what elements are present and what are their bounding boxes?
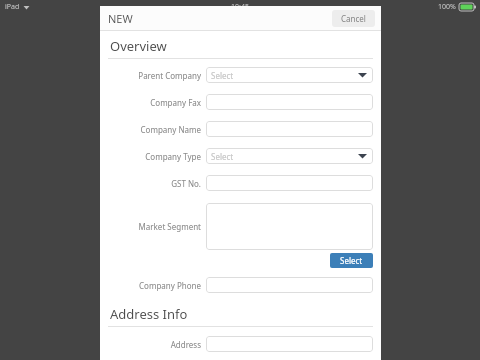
staticText: Company Fax	[108, 97, 201, 108]
staticText: Company Phone	[108, 280, 201, 291]
staticText: NEW	[108, 11, 133, 26]
button[interactable]: Select option	[206, 67, 373, 83]
button[interactable]: Cancel	[332, 10, 375, 27]
button[interactable]	[206, 203, 373, 250]
staticText: 100%	[438, 2, 456, 12]
button[interactable]	[206, 121, 373, 137]
staticText: Select	[211, 151, 234, 162]
staticText: Address	[108, 339, 201, 350]
staticText: Select	[211, 70, 234, 81]
staticText: Select	[340, 255, 363, 266]
button[interactable]	[206, 277, 373, 293]
button[interactable]	[206, 94, 373, 110]
button[interactable]	[206, 175, 373, 191]
staticText: Address Info	[110, 305, 188, 323]
staticText: Company Name	[108, 124, 201, 135]
button[interactable]: Select	[330, 253, 373, 268]
staticText: Parent Company	[108, 70, 201, 81]
staticText: Overview	[110, 37, 167, 55]
staticText: iPad	[5, 2, 20, 12]
staticText: Cancel	[341, 13, 366, 24]
staticText: GST No.	[108, 178, 201, 189]
staticText: Market Segment	[108, 221, 201, 232]
button[interactable]: Select option	[206, 148, 373, 164]
button[interactable]	[206, 336, 373, 352]
staticText: Company Type	[108, 151, 201, 162]
staticText: 10:45	[231, 2, 249, 12]
